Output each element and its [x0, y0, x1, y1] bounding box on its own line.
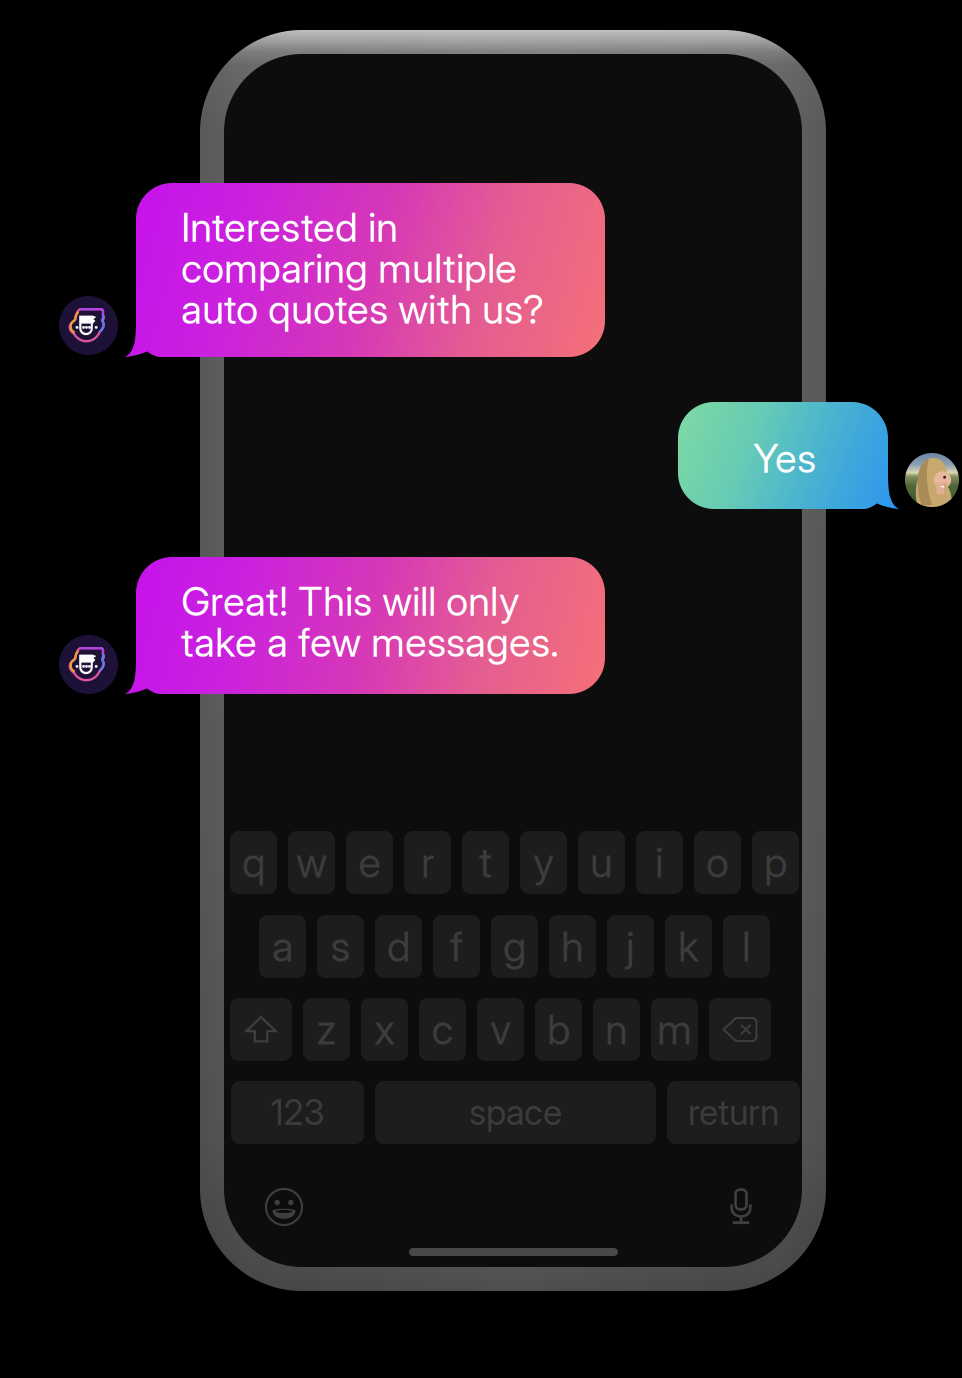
staticText: auto quotes with us?	[181, 285, 544, 333]
staticText: x	[374, 1004, 395, 1054]
staticText: Interested in	[181, 203, 398, 251]
button[interactable]: a	[259, 915, 306, 978]
button[interactable]: x	[361, 998, 408, 1061]
button[interactable]: Dictation	[729, 1186, 753, 1227]
staticText: f	[450, 921, 463, 971]
staticText: g	[503, 921, 526, 971]
staticText: r	[421, 837, 434, 887]
button[interactable]: Shift	[230, 998, 292, 1061]
button[interactable]: p	[752, 831, 799, 894]
staticText: e	[358, 837, 380, 887]
button[interactable]: t	[462, 831, 509, 894]
button[interactable]: z	[303, 998, 350, 1061]
button[interactable]: space	[375, 1081, 656, 1144]
staticText: o	[706, 837, 729, 887]
staticText: u	[590, 837, 613, 887]
button[interactable]: g	[491, 915, 538, 978]
button[interactable]: u	[578, 831, 625, 894]
button[interactable]: j	[607, 915, 654, 978]
button[interactable]: w	[288, 831, 335, 894]
staticText: Yes	[753, 434, 816, 482]
staticText: v	[490, 1004, 511, 1054]
staticText: 123	[270, 1091, 324, 1133]
staticText: p	[764, 837, 787, 887]
button[interactable]: Emoji keyboard	[264, 1187, 304, 1227]
staticText: n	[605, 1004, 628, 1054]
staticText: w	[296, 837, 327, 887]
button[interactable]: c	[419, 998, 466, 1061]
button[interactable]: n	[593, 998, 640, 1061]
button[interactable]: o	[694, 831, 741, 894]
staticText: a	[272, 921, 293, 971]
staticText: y	[533, 837, 554, 887]
staticText: q	[242, 837, 265, 887]
button[interactable]: h	[549, 915, 596, 978]
staticText: Great! This will only	[181, 577, 520, 625]
staticText: z	[316, 1004, 336, 1054]
staticText: l	[742, 921, 751, 971]
button[interactable]: f	[433, 915, 480, 978]
button[interactable]: v	[477, 998, 524, 1061]
staticText: k	[678, 921, 699, 971]
staticText: m	[657, 1004, 692, 1054]
button[interactable]: i	[636, 831, 683, 894]
button[interactable]: r	[404, 831, 451, 894]
button[interactable]: return	[667, 1081, 800, 1144]
button[interactable]: m	[651, 998, 698, 1061]
button[interactable]: d	[375, 915, 422, 978]
staticText: d	[387, 921, 410, 971]
button[interactable]: q	[230, 831, 277, 894]
staticText: i	[655, 837, 664, 887]
button[interactable]: l	[723, 915, 770, 978]
button[interactable]: s	[317, 915, 364, 978]
button[interactable]: y	[520, 831, 567, 894]
button[interactable]: Delete	[709, 998, 771, 1061]
button[interactable]: e	[346, 831, 393, 894]
staticText: h	[561, 921, 584, 971]
button[interactable]: b	[535, 998, 582, 1061]
button[interactable]: k	[665, 915, 712, 978]
staticText: s	[330, 921, 350, 971]
staticText: return	[688, 1091, 779, 1133]
staticText: t	[479, 837, 492, 887]
staticText: c	[431, 1004, 453, 1054]
staticText: comparing multiple	[181, 244, 517, 292]
staticText: j	[626, 921, 635, 971]
staticText: space	[469, 1091, 562, 1133]
button[interactable]: 123	[231, 1081, 364, 1144]
staticText: b	[547, 1004, 570, 1054]
staticText: take a few messages.	[181, 618, 559, 666]
